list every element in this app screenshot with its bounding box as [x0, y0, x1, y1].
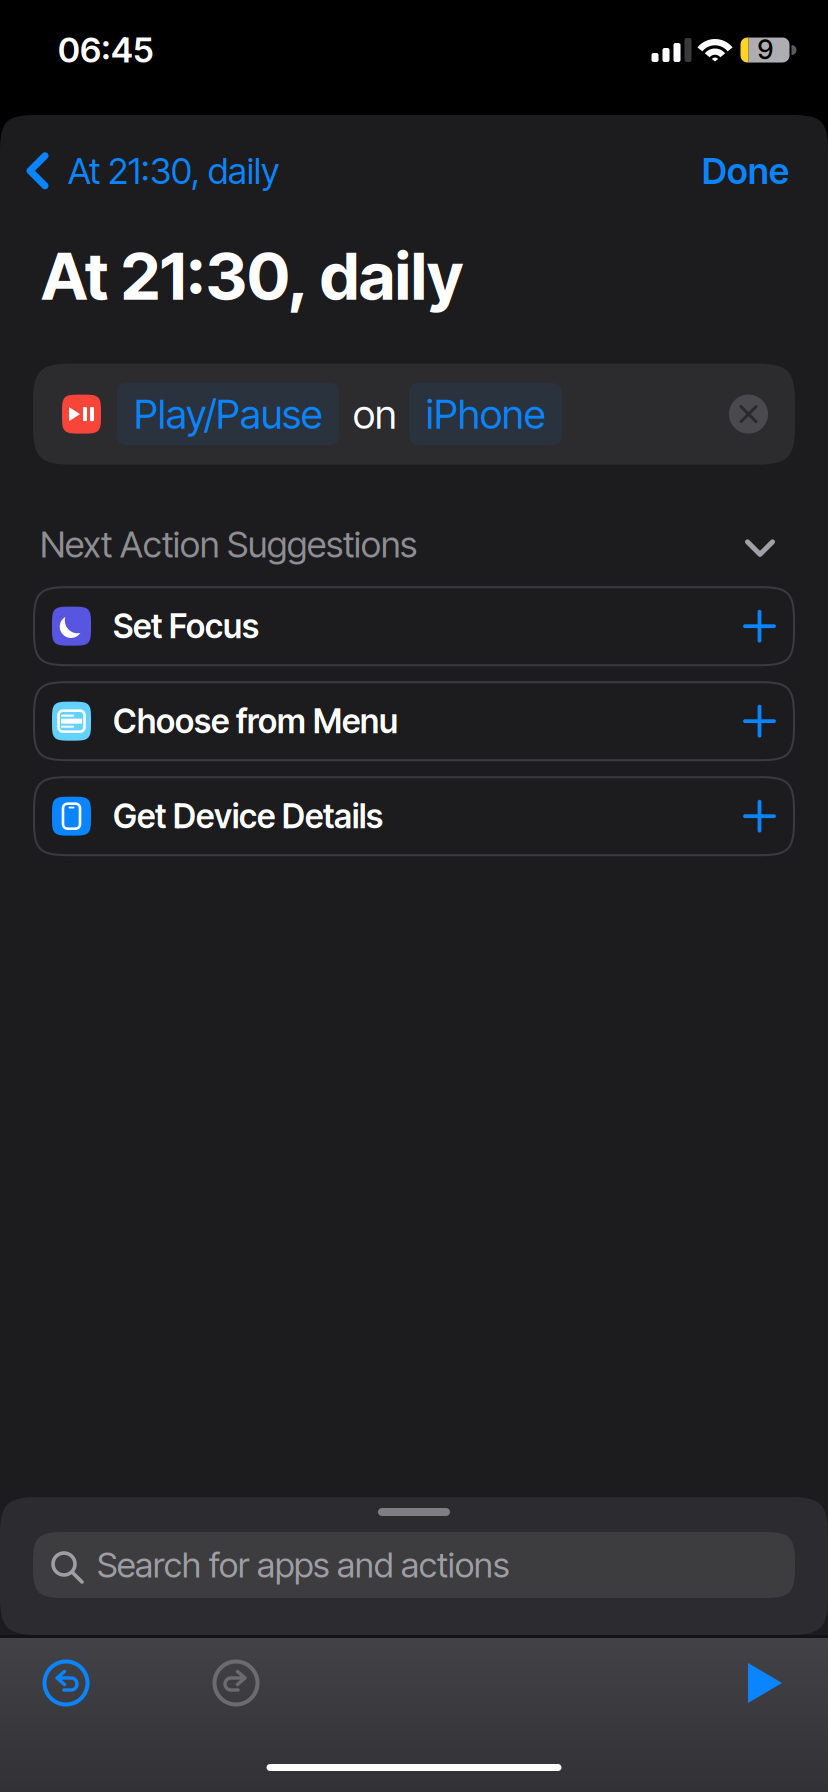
- button[interactable]: Done: [702, 139, 789, 203]
- button[interactable]: Set Focus: [34, 587, 794, 665]
- staticText: Next Action Suggestions: [40, 523, 417, 566]
- button[interactable]: Undo: [42, 1659, 90, 1707]
- staticText: 06:45: [58, 29, 154, 71]
- staticText: Set Focus: [113, 606, 259, 646]
- staticText: Done: [702, 149, 789, 193]
- button[interactable]: Collapse suggestions: [745, 535, 775, 553]
- button[interactable]: Redo: [212, 1659, 260, 1707]
- staticText: Get Device Details: [113, 796, 383, 836]
- button[interactable]: Search for apps and actions: [33, 1532, 795, 1598]
- staticText: At 21:30, daily: [68, 149, 279, 193]
- staticText: Choose from Menu: [113, 701, 398, 741]
- staticText: 9: [757, 33, 773, 66]
- staticText: Play/Pause: [134, 390, 322, 438]
- button[interactable]: Get Device Details: [34, 777, 794, 855]
- staticText: on: [353, 390, 397, 438]
- button[interactable]: Choose from Menu: [34, 682, 794, 760]
- staticText: iPhone: [426, 390, 545, 438]
- button[interactable]: Run shortcut: [748, 1663, 782, 1703]
- staticText: Search for apps and actions: [97, 1544, 509, 1586]
- button[interactable]: At 21:30, daily: [26, 139, 279, 203]
- staticText: At 21:30, daily: [41, 237, 463, 316]
- button[interactable]: Play/Pause: [33, 364, 795, 465]
